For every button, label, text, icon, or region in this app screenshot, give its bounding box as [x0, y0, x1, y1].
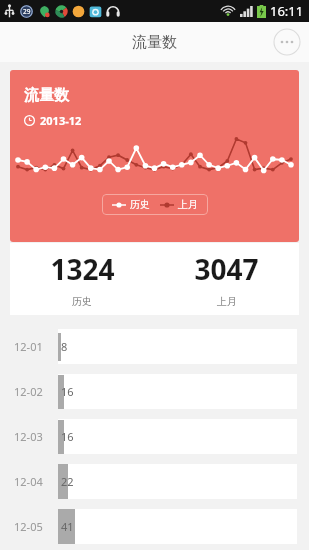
staticText: 历史	[72, 295, 92, 308]
button[interactable]: More options	[273, 28, 301, 56]
staticText: 1324	[50, 250, 115, 288]
staticText: 2013-12	[40, 113, 82, 128]
button[interactable]: 12-03	[0, 419, 309, 454]
staticText: 上月	[217, 295, 237, 308]
button[interactable]: 历史	[112, 198, 198, 211]
button[interactable]: 3047	[154, 243, 299, 315]
staticText: 12-01	[14, 339, 43, 354]
staticText: 12-04	[14, 474, 43, 489]
button[interactable]: 12-04	[0, 464, 309, 499]
button[interactable]: 12-02	[0, 374, 309, 409]
staticText: 12-03	[14, 429, 43, 444]
button[interactable]: 12-01	[0, 329, 309, 364]
staticText: 上月	[178, 198, 198, 211]
staticText: 12-05	[14, 519, 43, 534]
staticText: 29	[23, 7, 31, 16]
staticText: 41	[61, 519, 74, 534]
button[interactable]: 12-05	[0, 509, 309, 544]
staticText: 16	[61, 429, 74, 444]
staticText: 3047	[194, 250, 259, 288]
staticText: 22	[61, 474, 74, 489]
staticText: 历史	[130, 198, 150, 211]
button[interactable]: 流量数	[10, 70, 299, 242]
staticText: 12-02	[14, 384, 43, 399]
staticText: 8	[61, 339, 68, 354]
staticText: 16:11	[270, 2, 304, 20]
staticText: 流量数	[24, 86, 69, 105]
staticText: 流量数	[132, 33, 177, 52]
staticText: 16	[61, 384, 74, 399]
button[interactable]: 1324	[10, 243, 154, 315]
